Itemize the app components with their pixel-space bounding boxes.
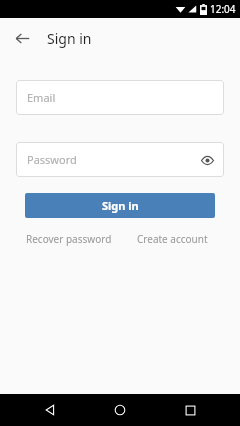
button[interactable]: Back — [30, 394, 70, 426]
button[interactable]: Email — [16, 80, 224, 115]
staticText: Sign in — [102, 198, 139, 213]
staticText: Sign in — [47, 29, 92, 48]
button[interactable]: Show password — [197, 150, 217, 170]
staticText: Recover password — [26, 232, 112, 246]
button[interactable]: Sign in — [25, 193, 215, 218]
staticText: Create account — [137, 232, 208, 246]
button[interactable]: Create account — [137, 229, 208, 249]
button[interactable]: Recents — [170, 394, 210, 426]
button[interactable]: Home — [100, 394, 140, 426]
button[interactable]: Back — [11, 27, 34, 50]
button[interactable]: Password — [16, 142, 224, 177]
staticText: Email — [27, 90, 56, 105]
staticText: 12:04 — [210, 2, 236, 16]
staticText: Password — [27, 152, 77, 167]
button[interactable]: Recover password — [26, 229, 112, 249]
